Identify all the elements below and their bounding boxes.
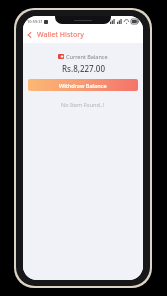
button[interactable]: Withdraw Balance bbox=[28, 79, 138, 91]
staticText: Rs.8,227.00 bbox=[62, 63, 105, 74]
staticText: Withdraw Balance bbox=[59, 82, 107, 89]
staticText: Wallet History bbox=[37, 30, 84, 40]
button[interactable]: Back bbox=[23, 27, 34, 43]
staticText: 10:59:31 bbox=[27, 19, 43, 24]
staticText: No Item Found..! bbox=[61, 101, 105, 108]
staticText: Current Balance bbox=[66, 53, 108, 60]
